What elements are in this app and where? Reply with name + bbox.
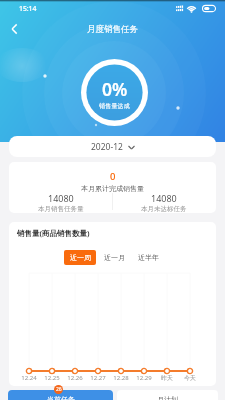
staticText: 15:14 <box>19 4 37 13</box>
staticText: 12.24 <box>21 374 37 382</box>
staticText: 昨天 <box>161 374 173 382</box>
staticText: 销售量达成 <box>99 102 130 109</box>
staticText: 12.26 <box>67 374 83 382</box>
button[interactable]: 当前任务 <box>8 390 113 400</box>
staticText: 12.29 <box>136 374 152 382</box>
staticText: 销售量(商品销售数量) <box>17 228 90 238</box>
staticText: 本月累计完成销售量 <box>81 184 144 193</box>
staticText: 月度销售任务 <box>87 24 138 35</box>
staticText: 2020-12 <box>91 141 123 153</box>
button[interactable]: 月计划 <box>117 390 218 400</box>
staticText: 当前任务 <box>47 395 75 400</box>
button[interactable]: 近一周 <box>64 250 96 265</box>
staticText: 0% <box>102 77 128 101</box>
staticText: 近半年 <box>138 253 159 262</box>
button[interactable]: 2020-12 <box>9 136 216 157</box>
staticText: 近一周 <box>70 253 91 262</box>
button[interactable]: 近半年 <box>132 250 164 265</box>
staticText: 近一月 <box>104 253 125 262</box>
staticText: 本月销售任务量 <box>38 205 84 213</box>
staticText: 0 <box>110 170 116 183</box>
staticText: 月计划 <box>157 395 178 400</box>
staticText: 本月未达标任务 <box>141 205 187 213</box>
staticText: 12.28 <box>113 374 129 382</box>
staticText: 14080 <box>48 192 74 204</box>
button[interactable]: Back <box>4 19 24 39</box>
staticText: 今天 <box>184 374 196 382</box>
button[interactable]: 近一月 <box>98 250 130 265</box>
staticText: 12.25 <box>44 374 60 382</box>
staticText: 26 <box>56 386 62 393</box>
staticText: 12.27 <box>90 374 106 382</box>
staticText: 14080 <box>151 192 177 204</box>
